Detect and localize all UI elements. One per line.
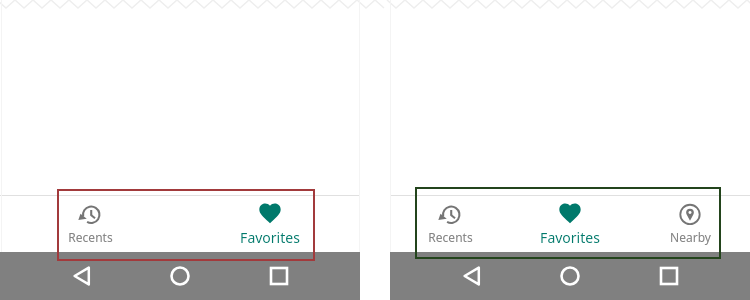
button[interactable]: Home (553, 259, 587, 293)
staticText: Recents (68, 229, 113, 245)
staticText: Favorites (240, 228, 300, 247)
staticText: Recents (428, 229, 473, 245)
button[interactable]: Recents (390, 196, 510, 252)
button[interactable]: Back (65, 259, 99, 293)
button[interactable]: Favorites (510, 196, 630, 252)
button[interactable]: Home (163, 259, 197, 293)
button[interactable]: Recents (0, 196, 180, 252)
button[interactable]: Nearby (630, 196, 750, 252)
staticText: Favorites (540, 228, 600, 247)
button[interactable]: Favorites (180, 196, 360, 252)
button[interactable]: Recent apps (652, 259, 686, 293)
staticText: Nearby (670, 229, 711, 245)
button[interactable]: Back (455, 259, 489, 293)
button[interactable]: Recent apps (262, 259, 296, 293)
